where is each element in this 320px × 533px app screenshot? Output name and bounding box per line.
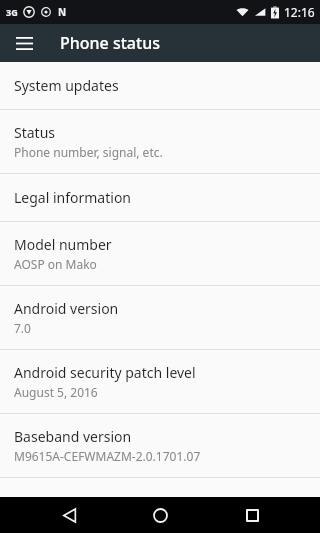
button[interactable]: Status — [0, 110, 320, 173]
button[interactable]: Android version — [0, 286, 320, 349]
button[interactable]: Home — [137, 497, 183, 533]
staticText: Baseband version — [14, 427, 132, 446]
staticText: Phone number, signal, etc. — [14, 144, 163, 160]
staticText: Phone status — [60, 32, 160, 54]
staticText: Status — [14, 123, 56, 142]
staticText: August 5, 2016 — [14, 384, 98, 400]
button[interactable]: Legal information — [0, 174, 320, 221]
staticText: M9615A-CEFWMAZM-2.0.1701.07 — [14, 448, 201, 464]
staticText: 7.0 — [14, 320, 31, 336]
staticText: Android security patch level — [14, 363, 196, 382]
staticText: AOSP on Mako — [14, 256, 97, 272]
staticText: 12:16 — [284, 4, 315, 20]
button[interactable]: Model number — [0, 222, 320, 285]
button[interactable]: Android security patch level — [0, 350, 320, 413]
staticText: 3G — [6, 6, 18, 18]
button[interactable]: Recent apps — [229, 497, 275, 533]
button[interactable]: System updates — [0, 62, 320, 109]
staticText: Legal information — [14, 188, 132, 207]
staticText: Android version — [14, 299, 119, 318]
staticText: System updates — [14, 76, 119, 95]
button[interactable]: Baseband version — [0, 414, 320, 477]
staticText: N — [58, 5, 67, 19]
button[interactable]: Open navigation drawer — [7, 26, 41, 60]
button[interactable]: Back — [46, 497, 92, 533]
staticText: Model number — [14, 235, 112, 254]
